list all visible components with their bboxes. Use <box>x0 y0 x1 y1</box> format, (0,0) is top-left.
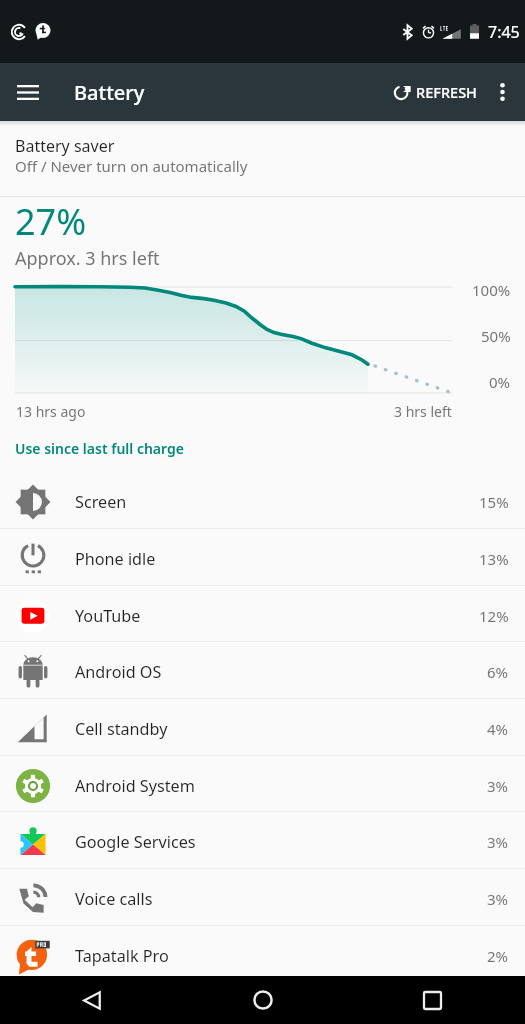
staticText: 3% <box>487 889 509 909</box>
staticText: Cell standby <box>75 718 168 740</box>
staticText: 50% <box>481 326 511 346</box>
staticText: 15% <box>479 492 509 512</box>
button[interactable]: More options <box>479 63 525 121</box>
button[interactable]: Battery saver <box>0 121 525 196</box>
staticText: 27% <box>15 197 87 246</box>
staticText: 13% <box>479 549 509 569</box>
staticText: Android System <box>75 775 195 797</box>
button[interactable]: Tapatalk Pro <box>0 926 525 981</box>
button[interactable]: Home <box>233 976 292 1024</box>
staticText: 2% <box>487 946 509 966</box>
staticText: Screen <box>75 491 127 513</box>
button[interactable]: Use since last full charge <box>0 439 199 458</box>
staticText: Voice calls <box>75 888 153 910</box>
staticText: Battery saver <box>15 135 115 157</box>
button[interactable]: Phone idle <box>0 529 525 585</box>
button[interactable]: YouTube <box>0 586 525 641</box>
button[interactable]: Voice calls <box>0 869 525 925</box>
staticText: 100% <box>472 280 511 300</box>
staticText: 0% <box>489 372 511 392</box>
button[interactable]: Screen <box>0 472 525 528</box>
staticText: 13 hrs ago <box>16 402 86 421</box>
staticText: Battery <box>74 79 145 106</box>
button[interactable]: Google Services <box>0 812 525 868</box>
button[interactable]: Recent apps <box>403 976 462 1024</box>
staticText: 3% <box>487 776 509 796</box>
button[interactable]: Navigation menu <box>0 63 56 121</box>
staticText: Phone idle <box>75 548 156 570</box>
staticText: 7:45 <box>488 21 520 43</box>
staticText: Off / Never turn on automatically <box>15 156 248 176</box>
staticText: 3 hrs left <box>394 402 452 421</box>
button[interactable]: REFRESH <box>384 68 479 116</box>
staticText: Google Services <box>75 831 196 853</box>
staticText: Tapatalk Pro <box>75 945 169 967</box>
staticText: Android OS <box>75 661 162 683</box>
staticText: YouTube <box>75 605 141 627</box>
staticText: 4% <box>487 719 509 739</box>
staticText: 6% <box>487 662 509 682</box>
staticText: Approx. 3 hrs left <box>15 246 160 271</box>
button[interactable]: Back <box>63 976 122 1024</box>
button[interactable]: Cell standby <box>0 699 525 755</box>
staticText: 12% <box>479 606 509 626</box>
button[interactable]: Android System <box>0 756 525 811</box>
staticText: 3% <box>487 832 509 852</box>
staticText: REFRESH <box>416 82 477 102</box>
button[interactable]: Android OS <box>0 642 525 698</box>
